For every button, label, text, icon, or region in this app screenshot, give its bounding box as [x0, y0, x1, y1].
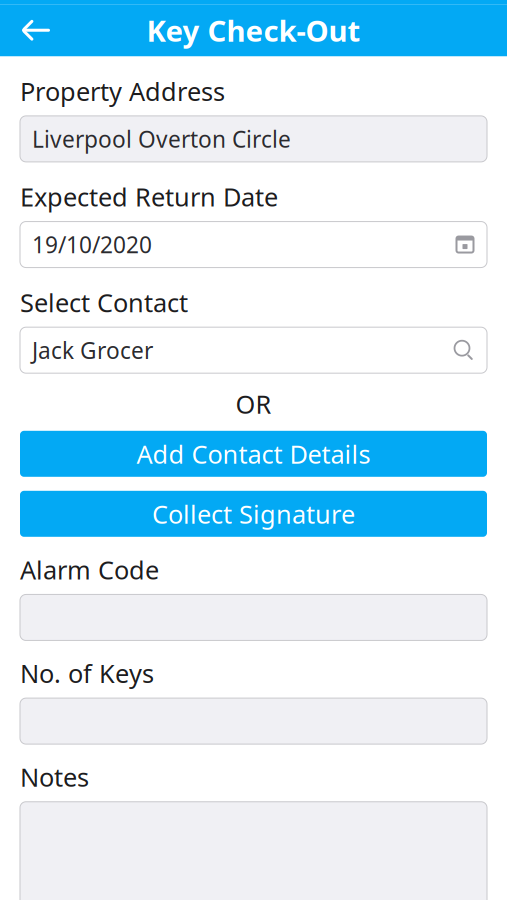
- staticText: No. of Keys: [20, 656, 154, 690]
- staticText: Liverpool Overton Circle: [32, 124, 291, 154]
- staticText: Collect Signature: [152, 497, 355, 531]
- staticText: Expected Return Date: [20, 180, 278, 213]
- staticText: Alarm Code: [20, 553, 159, 586]
- staticText: Select Contact: [20, 285, 188, 319]
- staticText: Notes: [20, 760, 89, 794]
- button[interactable]: Back: [10, 4, 62, 56]
- staticText: 19/10/2020: [32, 229, 152, 260]
- staticText: Add Contact Details: [136, 437, 370, 471]
- button[interactable]: 19/10/2020: [20, 221, 487, 267]
- button[interactable]: Add Contact Details: [20, 431, 487, 477]
- staticText: Key Check-Out: [146, 11, 360, 50]
- staticText: Property Address: [20, 74, 225, 108]
- button[interactable]: Jack Grocer: [20, 327, 487, 373]
- staticText: Carrier: [18, 0, 82, 5]
- button[interactable]: Collect Signature: [20, 491, 487, 537]
- staticText: 5:30 PM: [245, 0, 320, 5]
- staticText: OR: [235, 387, 271, 421]
- staticText: Jack Grocer: [32, 335, 153, 365]
